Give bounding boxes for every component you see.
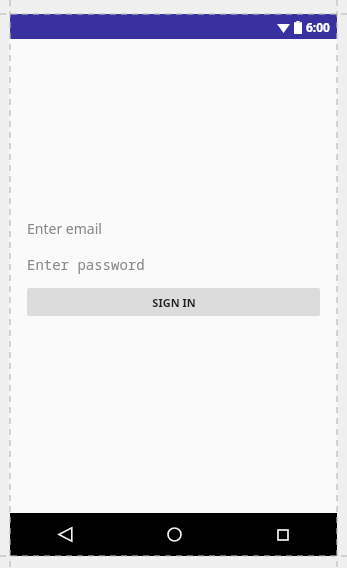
- button[interactable]: Enter email: [27, 213, 320, 243]
- button[interactable]: Back: [38, 513, 92, 556]
- button[interactable]: Home: [147, 513, 201, 556]
- staticText: 6:00: [306, 19, 330, 35]
- button[interactable]: Enter password: [27, 249, 320, 279]
- staticText: SIGN IN: [152, 295, 196, 310]
- staticText: Enter password: [27, 255, 145, 274]
- staticText: Enter email: [27, 219, 102, 238]
- button[interactable]: Recent apps: [256, 513, 310, 556]
- button[interactable]: SIGN IN: [27, 288, 320, 316]
